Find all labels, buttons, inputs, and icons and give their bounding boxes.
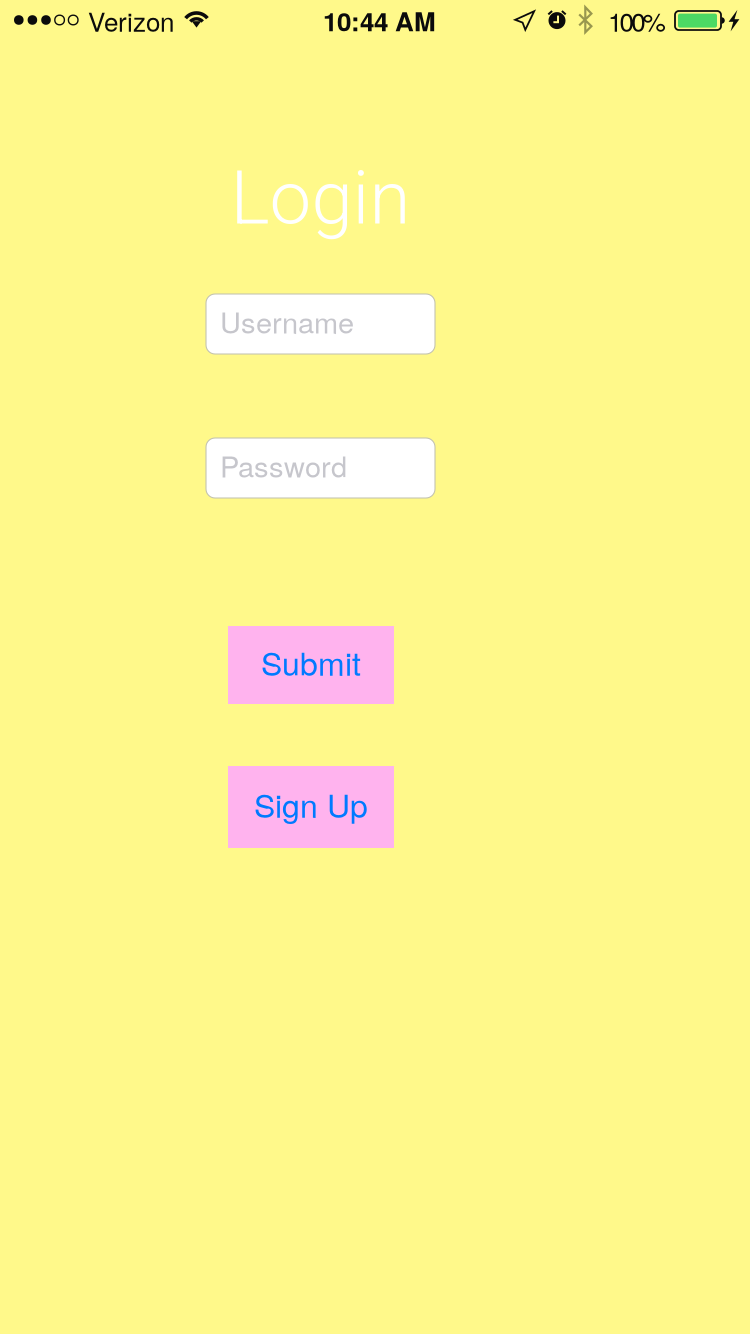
staticText: 10:44 AM: [323, 2, 436, 39]
button[interactable]: Password: [206, 438, 435, 498]
staticText: 100%: [608, 2, 666, 39]
staticText: Login: [230, 154, 410, 241]
staticText: Submit: [261, 639, 361, 685]
staticText: Sign Up: [254, 781, 368, 827]
button[interactable]: Sign Up: [228, 766, 394, 848]
staticText: Password: [220, 444, 347, 486]
button[interactable]: Username: [206, 294, 435, 354]
staticText: Username: [220, 300, 354, 342]
button[interactable]: Submit: [228, 626, 394, 704]
staticText: Verizon: [88, 2, 174, 39]
